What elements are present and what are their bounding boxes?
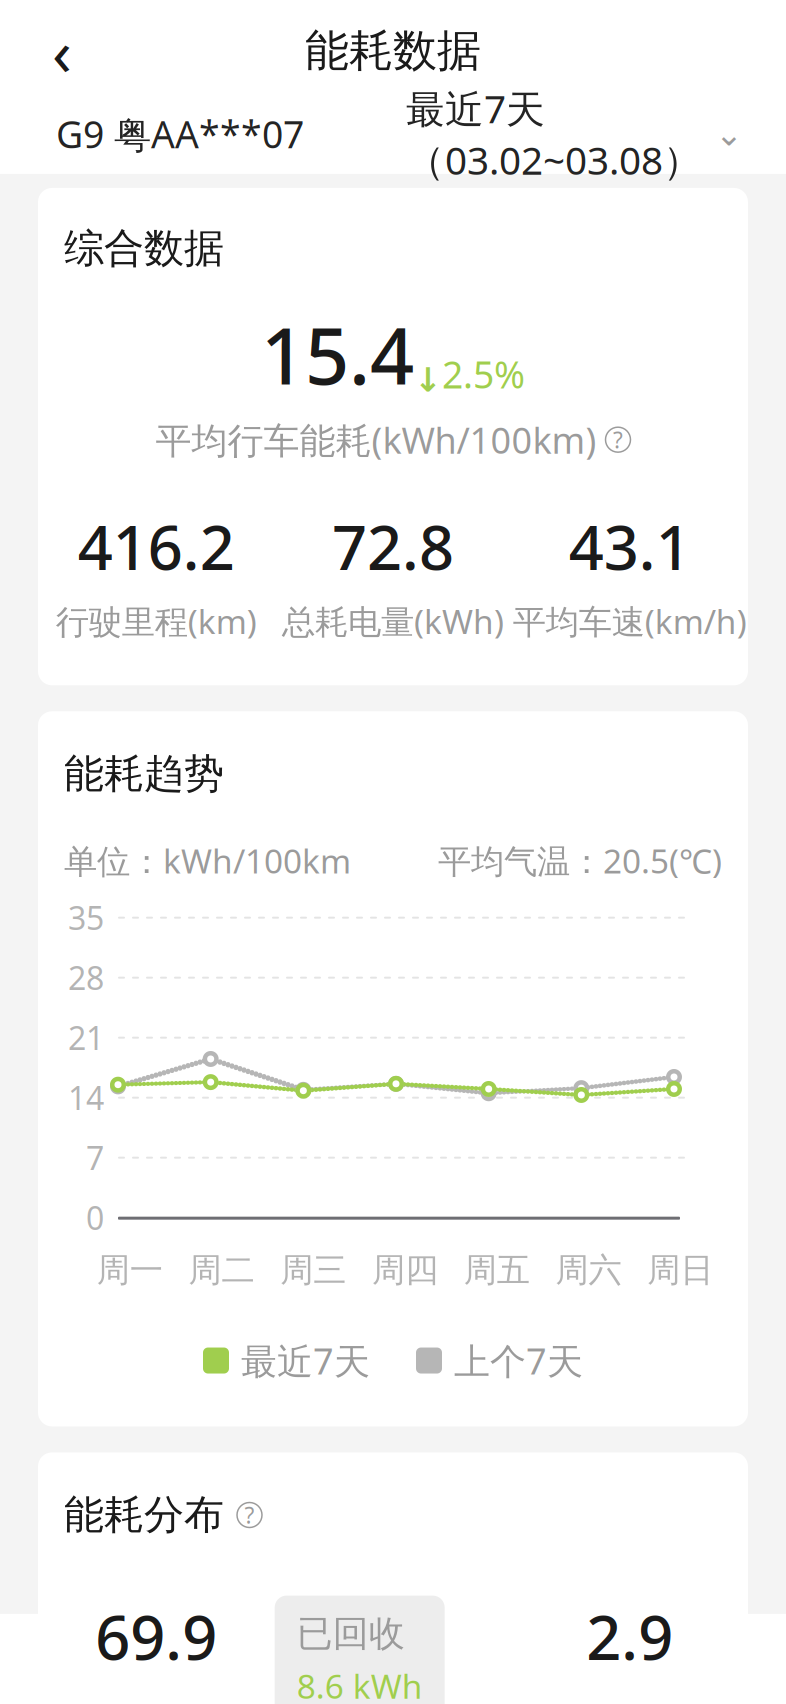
staticText: G9 粤AA***07: [56, 109, 304, 159]
staticText: 69.9: [95, 1596, 217, 1677]
staticText: 周三: [280, 1250, 346, 1291]
staticText: 8.6 kWh: [297, 1664, 423, 1704]
staticText: ‹: [52, 8, 72, 93]
staticText: 综合数据: [64, 224, 224, 273]
staticText: 能耗趋势: [64, 749, 224, 798]
staticText: 7: [86, 1136, 104, 1179]
staticText: 单位：kWh/100km: [64, 838, 351, 883]
staticText: 能耗分布: [64, 1490, 224, 1539]
staticText: 总耗电量(kWh): [282, 599, 504, 643]
staticText: 周六: [555, 1250, 621, 1291]
staticText: ?: [613, 425, 623, 455]
staticText: 43.1: [569, 506, 691, 587]
staticText: 上个7天: [454, 1337, 583, 1384]
staticText: 最近7天（03.02~03.08）: [406, 83, 702, 185]
staticText: 28: [68, 956, 104, 999]
staticText: 2.9: [586, 1596, 673, 1677]
staticText: 行驶里程(km): [56, 599, 257, 643]
staticText: 最近7天: [241, 1337, 370, 1384]
button[interactable]: Back: [26, 15, 98, 87]
staticText: ?: [244, 1500, 254, 1530]
staticText: 周五: [464, 1250, 530, 1291]
staticText: 416.2: [78, 506, 235, 587]
staticText: 已回收: [297, 1612, 405, 1656]
staticText: 72.8: [332, 506, 454, 587]
staticText: 平均气温：20.5(℃): [438, 838, 722, 883]
button[interactable]: About average driving consumption: [605, 427, 630, 452]
staticText: 平均行车能耗(kWh/100km): [155, 416, 596, 464]
button[interactable]: About consumption distribution: [237, 1502, 262, 1527]
staticText: 35: [68, 896, 104, 939]
staticText: ⌄: [715, 115, 743, 153]
staticText: 21: [68, 1016, 104, 1059]
staticText: 平均车速(km/h): [513, 599, 747, 643]
staticText: 2.5%: [442, 349, 525, 399]
staticText: 能耗数据: [305, 24, 481, 78]
staticText: 周一: [97, 1250, 163, 1291]
staticText: ↓: [414, 361, 442, 399]
staticText: 周日: [647, 1250, 713, 1291]
staticText: 15.4: [261, 303, 414, 406]
staticText: 14: [68, 1076, 104, 1119]
staticText: 0: [86, 1196, 104, 1239]
staticText: 周四: [372, 1250, 438, 1291]
staticText: 周二: [189, 1250, 255, 1291]
button[interactable]: 最近7天（03.02~03.08）: [406, 83, 740, 185]
